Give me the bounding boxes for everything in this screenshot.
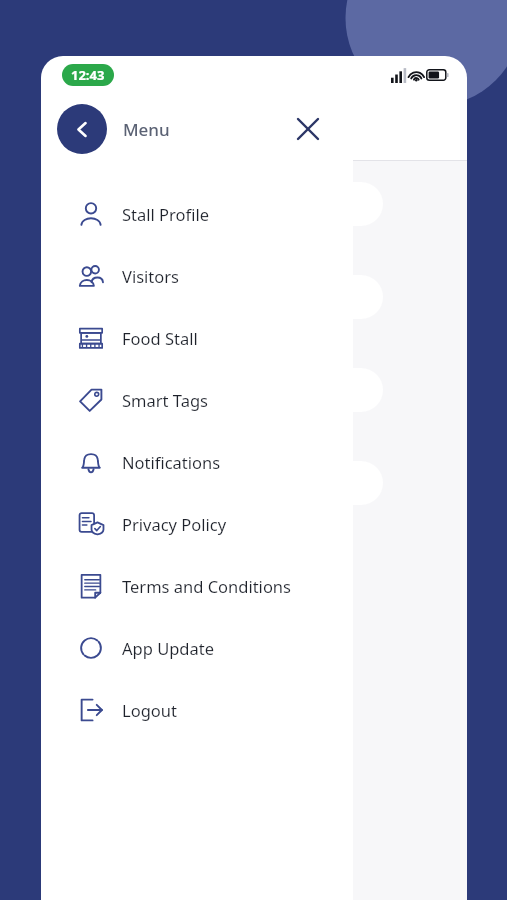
staticText: Logout (122, 699, 177, 721)
button[interactable]: Logout (41, 679, 353, 741)
button[interactable]: Stall Profile (41, 183, 353, 245)
button[interactable]: Notifications (41, 431, 353, 493)
button[interactable]: Privacy Policy (41, 493, 353, 555)
staticText: Notifications (122, 451, 221, 473)
staticText: Privacy Policy (122, 513, 227, 535)
staticText: Food Stall (122, 327, 198, 349)
staticText: Smart Tags (122, 389, 208, 411)
staticText: Visitors (122, 265, 179, 287)
button[interactable]: Close (284, 105, 332, 153)
button[interactable]: Menu (254, 103, 302, 151)
button[interactable]: Terms and Conditions (41, 555, 353, 617)
staticText: App Update (122, 637, 215, 659)
button[interactable]: Rescheduled (153, 461, 383, 505)
button[interactable]: Back (57, 104, 107, 154)
staticText: Terms and Conditions (122, 575, 291, 597)
button[interactable]: Completed (153, 368, 383, 412)
staticText: W (316, 113, 336, 142)
button[interactable]: Meeting Reminder (153, 275, 383, 319)
button[interactable]: App Update (41, 617, 353, 679)
staticText: Schedule (171, 195, 232, 214)
button[interactable]: Food Stall (41, 307, 353, 369)
button[interactable]: Visitors (41, 245, 353, 307)
staticText: Menu (123, 118, 170, 141)
staticText: 12:43 (71, 66, 105, 84)
button[interactable]: Smart Tags (41, 369, 353, 431)
staticText: Completed (171, 381, 245, 400)
staticText: Stall Profile (122, 203, 210, 225)
button[interactable]: Schedule (153, 182, 383, 226)
